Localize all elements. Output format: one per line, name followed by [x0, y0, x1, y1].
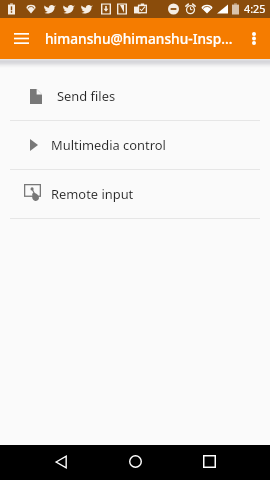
button[interactable]: Back	[43, 444, 78, 479]
staticText: himanshu@himanshu-Insp...	[45, 29, 233, 48]
button[interactable]: Open navigation drawer	[1, 18, 42, 59]
staticText: Multimedia control	[51, 136, 166, 154]
button[interactable]: More options	[237, 22, 270, 55]
button[interactable]: Send files	[0, 72, 270, 120]
staticText: Remote input	[51, 185, 134, 203]
staticText: Send files	[57, 87, 116, 105]
button[interactable]: Home	[118, 444, 153, 479]
button[interactable]: Recent apps	[192, 444, 227, 479]
button[interactable]: Remote input	[0, 170, 270, 218]
button[interactable]: Multimedia control	[0, 121, 270, 169]
staticText: 4:25	[244, 1, 266, 16]
